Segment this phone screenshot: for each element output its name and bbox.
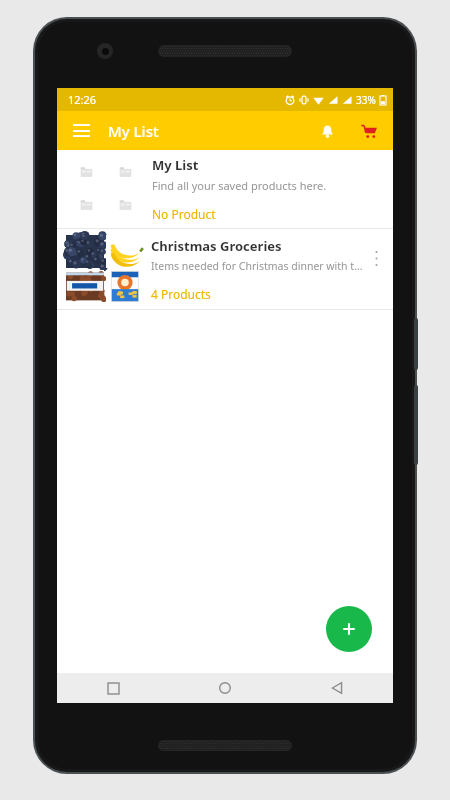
button[interactable]: Notifications [311, 115, 343, 147]
button[interactable]: Open navigation menu [63, 113, 99, 149]
staticText: Christmas Groceries [151, 237, 282, 255]
button[interactable]: Back [281, 673, 393, 703]
button[interactable]: Christmas Groceries [57, 229, 393, 309]
button[interactable]: My List [57, 150, 393, 228]
button[interactable]: Add list [326, 606, 372, 652]
staticText: 33% [356, 93, 376, 107]
button[interactable]: Shopping cart [353, 115, 385, 147]
staticText: Items needed for Christmas dinner with t… [151, 259, 365, 273]
button[interactable]: Recent apps [57, 673, 169, 703]
staticText: 12:26 [68, 92, 97, 107]
button[interactable]: More options [365, 249, 387, 289]
staticText: 4 Products [151, 286, 211, 302]
button[interactable]: Home [169, 673, 281, 703]
staticText: Find all your saved products here. [152, 178, 327, 193]
staticText: No Product [152, 206, 216, 222]
staticText: My List [152, 156, 199, 174]
staticText: My List [108, 121, 159, 141]
